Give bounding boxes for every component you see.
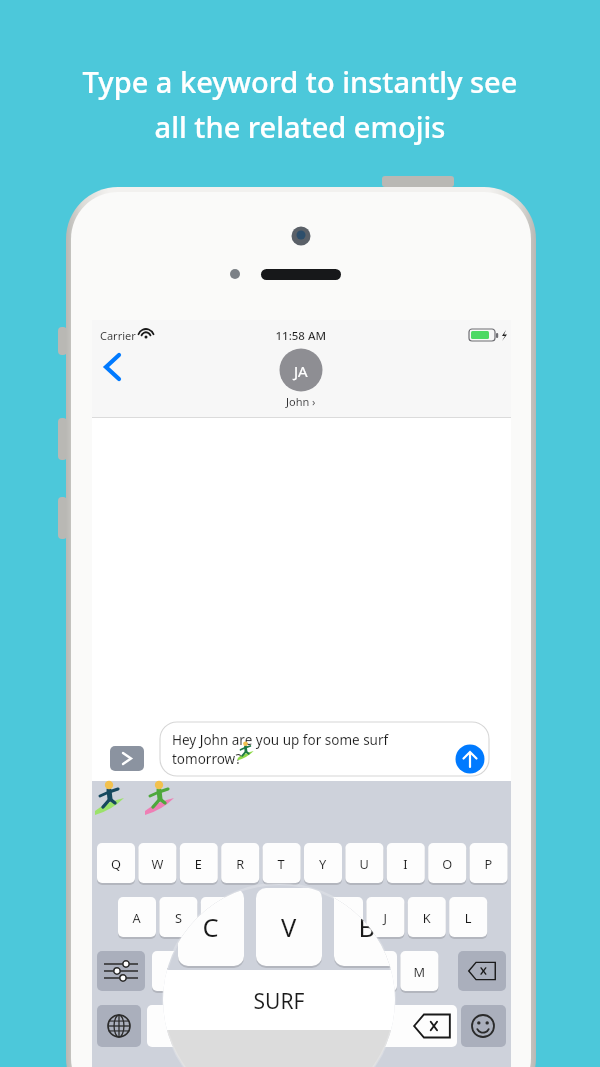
button[interactable]: Emoji keyboard app promo xyxy=(0,0,600,1067)
